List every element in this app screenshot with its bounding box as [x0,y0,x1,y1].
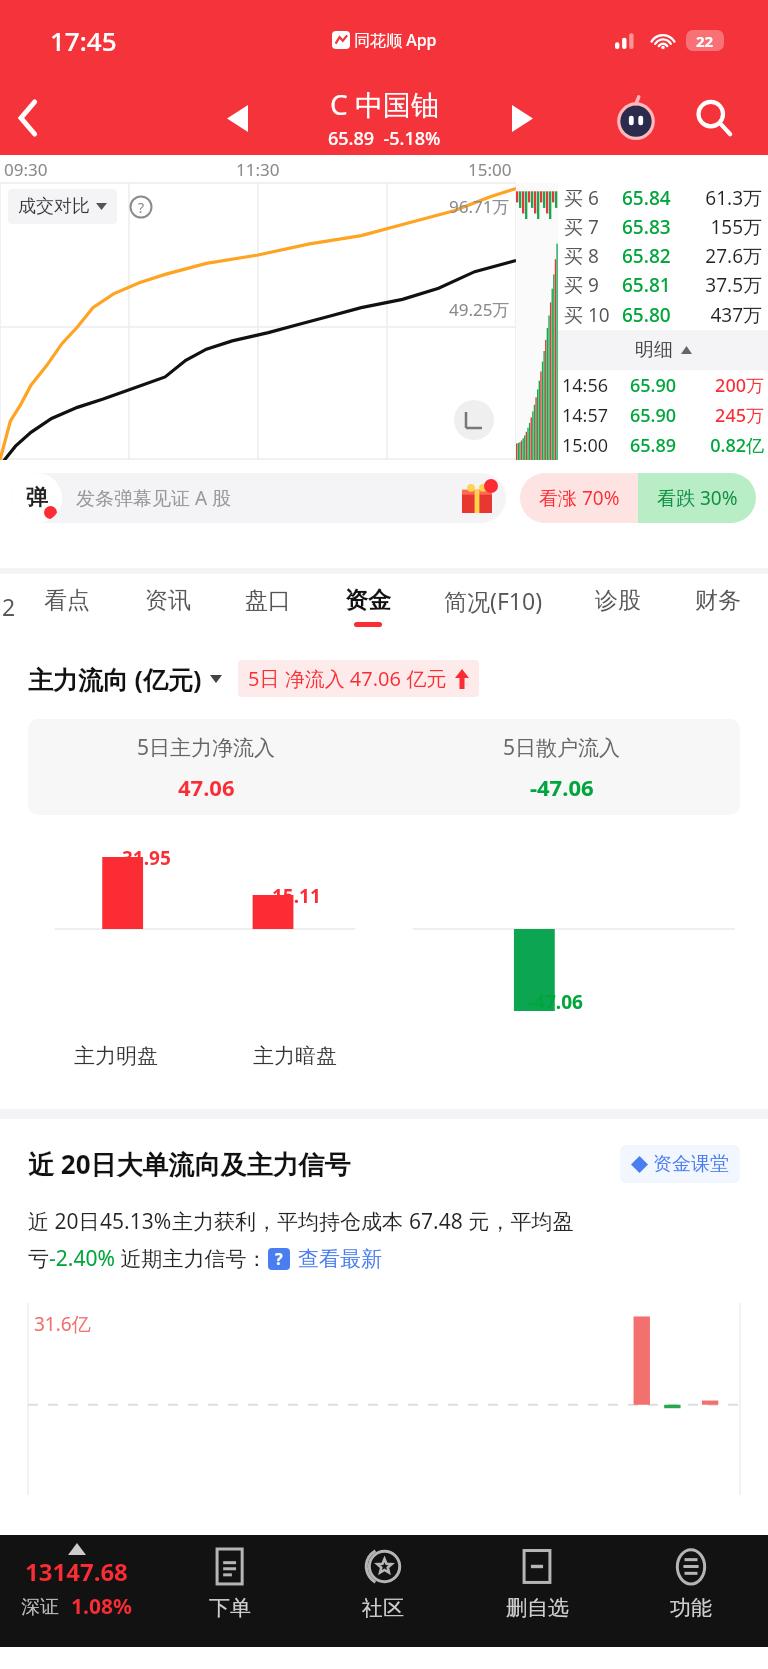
staticText: 买 10 [564,302,622,328]
button[interactable]: 删自选 [460,1535,614,1647]
button[interactable]: 资讯 [117,574,218,638]
button[interactable]: 弹 [12,473,506,523]
button[interactable]: Back [0,89,58,147]
staticText: 资金 [345,586,391,615]
staticText: 深证 [21,1595,59,1619]
staticText: C 中国铀 [330,85,439,123]
staticText: 65.89 -5.18% [328,126,441,151]
button[interactable]: Search [684,88,744,148]
staticText: 5日 净流入 47.06 亿元 [248,665,447,692]
staticText: 看涨 70% [539,485,620,511]
staticText: 主力流向 (亿元) [28,662,202,696]
staticText: 13147.68 [25,1555,128,1588]
staticText: 65.81 [622,272,692,298]
staticText: 45.13% [100,1207,172,1236]
staticText: 近期主力信号： [115,1244,268,1273]
button[interactable]: 资金 [318,574,418,638]
button[interactable]: 买 9 [558,270,768,300]
button[interactable]: 看涨 70% [520,473,638,523]
staticText: 67.48 [409,1207,463,1236]
staticText: ? [138,198,145,217]
button[interactable]: 财务 [668,574,768,638]
button[interactable]: 13147.68 [0,1535,153,1647]
staticText: 主力获利，平均持仓成本 [172,1207,409,1236]
button[interactable]: Fullscreen [454,400,494,440]
staticText: 看跌 30% [657,485,738,511]
staticText: 245万 [697,403,764,428]
staticText: 14:57 [562,403,630,428]
staticText: 功能 [670,1595,712,1621]
staticText: 看点 [44,586,90,615]
staticText: 简况(F10) [444,585,543,616]
staticText: 15.11 [272,883,321,909]
staticText: 5日主力净流入 [137,733,276,762]
button[interactable]: 14:56 [558,370,768,400]
button[interactable]: 买 10 [558,300,768,330]
staticText: 155万 [692,214,762,240]
button[interactable]: 看点 [16,574,117,638]
button[interactable]: 买 7 [558,212,768,241]
staticText: 主力暗盘 [253,1043,337,1069]
staticText: 14:56 [562,373,630,398]
button[interactable]: 功能 [614,1535,768,1647]
staticText: 437万 [692,302,762,328]
staticText: 发条弹幕见证 A 股 [76,485,232,511]
staticText: 买 6 [564,185,622,211]
button[interactable]: 14:57 [558,400,768,430]
staticText: 弹 [26,484,48,512]
button[interactable]: 看跌 30% [638,473,756,523]
staticText: 2 [2,591,16,622]
button[interactable]: 买 8 [558,241,768,270]
button[interactable]: 主力流向 (亿元) [28,662,222,696]
staticText: 15:00 [468,158,512,181]
button[interactable]: 查看最新 [298,1246,382,1272]
button[interactable]: 明细 [558,330,768,370]
button[interactable]: 诊股 [568,574,668,638]
staticText: 65.84 [622,185,692,211]
staticText: 主力明盘 [74,1043,158,1069]
staticText: 社区 [362,1595,404,1621]
button[interactable]: Previous stock [205,86,269,150]
staticText: 61.3万 [692,185,762,211]
staticText: 09:30 [4,158,48,181]
staticText: ? [275,1248,283,1270]
button[interactable]: Help [129,195,153,219]
staticText: 15:00 [562,433,630,458]
staticText: 买 7 [564,214,622,240]
staticText: 65.90 [630,403,697,428]
button[interactable]: 15:00 [558,430,768,460]
button[interactable]: 盘口 [218,574,318,638]
staticText: 31.95 [122,845,171,871]
staticText: 资讯 [145,586,191,615]
staticText: 17:45 [50,23,117,58]
staticText: 22 [696,31,714,51]
button[interactable]: 5日 净流入 47.06 亿元 [238,660,479,697]
button[interactable]: 简况(F10) [418,574,568,638]
staticText: 65.80 [622,302,692,328]
staticText: 31.6亿 [34,1311,91,1337]
staticText: 1.08% [71,1592,132,1621]
staticText: 65.89 [630,433,697,458]
staticText: 同花顺 App [354,29,437,51]
staticText: 65.83 [622,214,692,240]
staticText: 200万 [697,373,764,398]
staticText: 明细 [635,338,673,362]
staticText: 删自选 [506,1595,569,1621]
staticText: 盘口 [245,586,291,615]
button[interactable]: AI assistant [608,90,664,146]
button[interactable]: 成交对比 [8,189,117,224]
staticText: 11:30 [236,158,280,181]
button[interactable]: 资金课堂 [620,1145,740,1183]
button[interactable]: 买 6 [558,183,768,212]
button[interactable]: Next stock [490,86,554,150]
button[interactable]: 下单 [153,1535,306,1647]
staticText: 47.06 [178,772,235,802]
staticText: 财务 [695,586,741,615]
staticText: 资金课堂 [653,1152,729,1176]
staticText: 成交对比 [18,195,90,218]
staticText: 65.90 [630,373,697,398]
staticText: 下单 [209,1595,251,1621]
staticText: -47.06 [528,989,583,1015]
button[interactable]: 社区 [306,1535,460,1647]
staticText: -47.06 [530,772,594,802]
